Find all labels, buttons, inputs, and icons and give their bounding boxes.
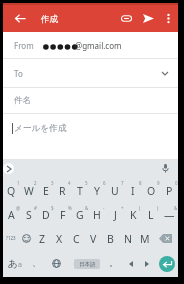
- button[interactable]: N: [119, 226, 136, 250]
- staticText: I: [131, 184, 135, 198]
- button[interactable]: J: [106, 202, 124, 226]
- staticText: D: [42, 208, 50, 222]
- button[interactable]: F: [54, 202, 71, 226]
- staticText: R: [59, 184, 66, 198]
- button[interactable]: More options: [160, 5, 177, 32]
- button[interactable]: Send: [137, 5, 160, 32]
- button[interactable]: From: [3, 32, 178, 58]
- staticText: G: [76, 208, 84, 222]
- staticText: E: [43, 184, 49, 198]
- staticText: 7: [121, 180, 124, 186]
- button[interactable]: U: [106, 177, 124, 202]
- button[interactable]: Attach file: [115, 5, 137, 32]
- button[interactable]: 件名: [3, 88, 178, 113]
- button[interactable]: A: [3, 202, 20, 226]
- staticText: From: [14, 40, 34, 51]
- button[interactable]: X: [51, 226, 68, 250]
- button[interactable]: O: [142, 177, 160, 202]
- staticText: H: [93, 208, 101, 222]
- staticText: Y: [94, 184, 100, 198]
- button[interactable]: Backspace: [153, 226, 178, 250]
- button[interactable]: C: [68, 226, 85, 250]
- staticText: +: [121, 205, 124, 211]
- staticText: To: [14, 68, 23, 79]
- staticText: S: [26, 208, 32, 222]
- staticText: 件名: [14, 95, 31, 106]
- staticText: 4: [68, 180, 71, 186]
- button[interactable]: —: [160, 202, 178, 226]
- staticText: K: [130, 208, 137, 222]
- staticText: B: [107, 232, 114, 246]
- staticText: メールを作成: [14, 123, 67, 134]
- button[interactable]: K: [124, 202, 142, 226]
- button[interactable]: H: [88, 202, 106, 226]
- staticText: a: [18, 260, 22, 270]
- button[interactable]: Move cursor left: [122, 250, 139, 277]
- button[interactable]: M: [136, 226, 153, 250]
- staticText: 日本語: [79, 261, 96, 268]
- button[interactable]: Back: [3, 5, 36, 32]
- staticText: Q: [7, 184, 16, 198]
- staticText: A: [8, 208, 15, 222]
- staticText: 。: [109, 257, 118, 268]
- staticText: 6: [103, 180, 106, 186]
- staticText: T: [77, 184, 83, 198]
- button[interactable]: Enter: [155, 250, 178, 277]
- staticText: P: [166, 184, 173, 198]
- staticText: &: [174, 205, 178, 211]
- staticText: F: [60, 208, 66, 222]
- staticText: $: [51, 205, 54, 211]
- button[interactable]: Z: [34, 226, 51, 250]
- staticText: 1: [17, 180, 20, 186]
- button[interactable]: 。: [104, 250, 122, 277]
- button[interactable]: Show suggestions: [3, 163, 14, 174]
- staticText: (: [139, 205, 141, 211]
- button[interactable]: S: [20, 202, 37, 226]
- button[interactable]: Move cursor right: [139, 250, 155, 277]
- button[interactable]: T: [71, 177, 88, 202]
- staticText: V: [90, 232, 97, 246]
- staticText: X: [56, 232, 63, 246]
- button[interactable]: B: [102, 226, 119, 250]
- staticText: O: [147, 184, 156, 198]
- staticText: ): [157, 205, 159, 211]
- staticText: 8: [139, 180, 142, 186]
- button[interactable]: G: [71, 202, 88, 226]
- button[interactable]: I: [124, 177, 142, 202]
- button[interactable]: L: [142, 202, 160, 226]
- staticText: C: [73, 232, 80, 246]
- button[interactable]: P: [160, 177, 178, 202]
- staticText: &: [85, 205, 89, 211]
- button[interactable]: Change language: [47, 250, 65, 277]
- button[interactable]: Symbols: [3, 226, 19, 250]
- staticText: 9: [157, 180, 160, 186]
- staticText: 作成: [41, 14, 59, 25]
- staticText: %: [68, 205, 72, 211]
- staticText: 、: [32, 257, 41, 268]
- staticText: U: [111, 184, 119, 198]
- staticText: —: [164, 208, 175, 222]
- button[interactable]: Q: [3, 177, 20, 202]
- button[interactable]: R: [54, 177, 71, 202]
- staticText: -: [103, 205, 105, 211]
- staticText: ?123: [6, 235, 16, 241]
- button[interactable]: Emoji: [19, 226, 34, 250]
- button[interactable]: To: [3, 59, 178, 87]
- button[interactable]: Voice input: [158, 161, 172, 175]
- button[interactable]: Space: [65, 250, 104, 277]
- button[interactable]: E: [37, 177, 54, 202]
- button[interactable]: W: [20, 177, 37, 202]
- staticText: @gmail.com: [75, 40, 122, 51]
- button[interactable]: Switch to alphabet: [3, 250, 26, 277]
- staticText: Z: [39, 232, 46, 246]
- button[interactable]: 、: [26, 250, 47, 277]
- button[interactable]: メールを作成: [3, 114, 178, 159]
- button[interactable]: V: [85, 226, 102, 250]
- button[interactable]: D: [37, 202, 54, 226]
- staticText: W: [24, 184, 34, 198]
- staticText: 0: [175, 180, 178, 186]
- staticText: 2: [34, 180, 37, 186]
- staticText: 3: [51, 180, 54, 186]
- staticText: L: [148, 208, 154, 222]
- button[interactable]: Y: [88, 177, 106, 202]
